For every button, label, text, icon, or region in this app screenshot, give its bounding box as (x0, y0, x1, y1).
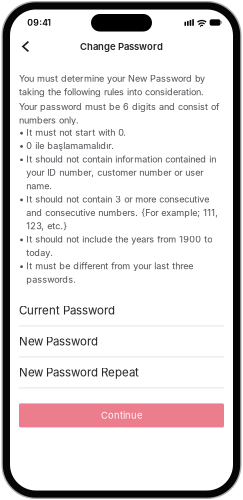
staticText: It must be different from your last thre… (26, 261, 193, 285)
staticText: It should not contain information contai… (26, 154, 216, 191)
staticText: Continue (101, 410, 142, 421)
staticText: • (19, 127, 24, 138)
staticText: • (19, 261, 24, 272)
button[interactable]: Continue (19, 403, 224, 427)
staticText: It should not contain 3 or more consecut… (26, 194, 218, 231)
staticText: New Password (19, 334, 98, 348)
staticText: It must not start with 0. (26, 127, 126, 138)
staticText: • (19, 154, 24, 165)
staticText: 0 ile başlamamalıdır. (26, 140, 114, 151)
button[interactable]: Back (10, 37, 38, 56)
button[interactable]: Current Password (19, 295, 224, 326)
staticText: Current Password (19, 303, 115, 317)
staticText: 09:41 (27, 17, 51, 28)
staticText: • (19, 140, 24, 151)
staticText: • (19, 194, 24, 205)
button[interactable]: New Password Repeat (19, 357, 224, 388)
staticText: Your password must be 6 digits and consi… (19, 101, 219, 126)
staticText: It should not include the years from 190… (26, 234, 212, 258)
staticText: • (19, 234, 24, 245)
staticText: Change Password (80, 41, 163, 52)
staticText: You must determine your New Password by … (19, 73, 205, 97)
button[interactable]: New Password (19, 326, 224, 357)
staticText: New Password Repeat (19, 365, 139, 379)
